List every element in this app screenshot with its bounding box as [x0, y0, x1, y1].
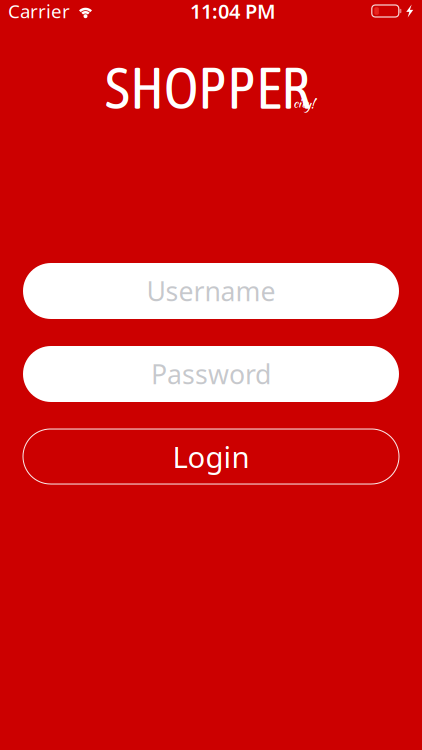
staticText: Password: [151, 356, 271, 392]
staticText: Login: [172, 437, 249, 476]
staticText: Carrier: [8, 0, 70, 23]
staticText: SHOPPER: [105, 54, 310, 121]
staticText: Username: [146, 273, 275, 309]
staticText: 11:04 PM: [190, 0, 276, 24]
button[interactable]: Login: [23, 429, 399, 484]
staticText: city!: [293, 95, 315, 112]
button[interactable]: Username: [23, 263, 399, 319]
button[interactable]: Password: [23, 346, 399, 402]
